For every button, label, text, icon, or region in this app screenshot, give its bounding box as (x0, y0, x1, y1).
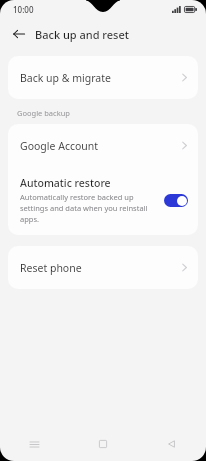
staticText: Google backup (17, 108, 70, 118)
button[interactable]: Automatic restore toggle (164, 194, 188, 207)
staticText: Google Account (20, 139, 182, 153)
staticText: 10:00 (13, 4, 34, 15)
button[interactable]: Back (137, 427, 206, 461)
button[interactable]: Back (9, 24, 29, 44)
staticText: Automatically restore backed up settings… (20, 192, 156, 224)
button[interactable]: Home (68, 427, 137, 461)
button[interactable]: Recent apps (0, 427, 68, 461)
staticText: Back up and reset (35, 27, 129, 42)
staticText: Automatic restore (20, 176, 111, 190)
button[interactable]: Automatic restore (8, 167, 198, 235)
button[interactable]: Google Account (8, 124, 198, 167)
button[interactable]: Back up & migrate (8, 56, 198, 99)
staticText: Reset phone (20, 261, 182, 275)
staticText: Back up & migrate (20, 71, 182, 85)
button[interactable]: Reset phone (8, 246, 198, 289)
